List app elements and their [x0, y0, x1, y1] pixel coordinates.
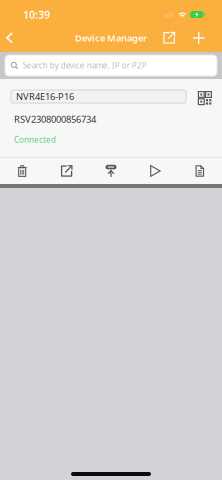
staticText: 10:39: [23, 7, 50, 22]
staticText: Search by device name, IP or P2P: [23, 60, 147, 71]
button[interactable]: Logs: [178, 158, 222, 183]
button[interactable]: Back: [1, 27, 19, 49]
button[interactable]: Scan QR code: [198, 90, 212, 105]
button[interactable]: Delete: [0, 158, 44, 183]
button[interactable]: Edit: [44, 158, 89, 183]
button[interactable]: Live view: [133, 158, 178, 183]
button[interactable]: Add device: [184, 27, 211, 49]
staticText: RSV2308000856734: [14, 113, 96, 125]
staticText: Connected: [14, 134, 56, 145]
button[interactable]: Share: [157, 27, 184, 49]
button[interactable]: Remote configuration: [89, 158, 133, 183]
button[interactable]: Search by device name, IP or P2P: [5, 55, 217, 76]
staticText: Device Manager: [75, 32, 147, 44]
staticText: NVR4E16-P16: [16, 90, 74, 103]
